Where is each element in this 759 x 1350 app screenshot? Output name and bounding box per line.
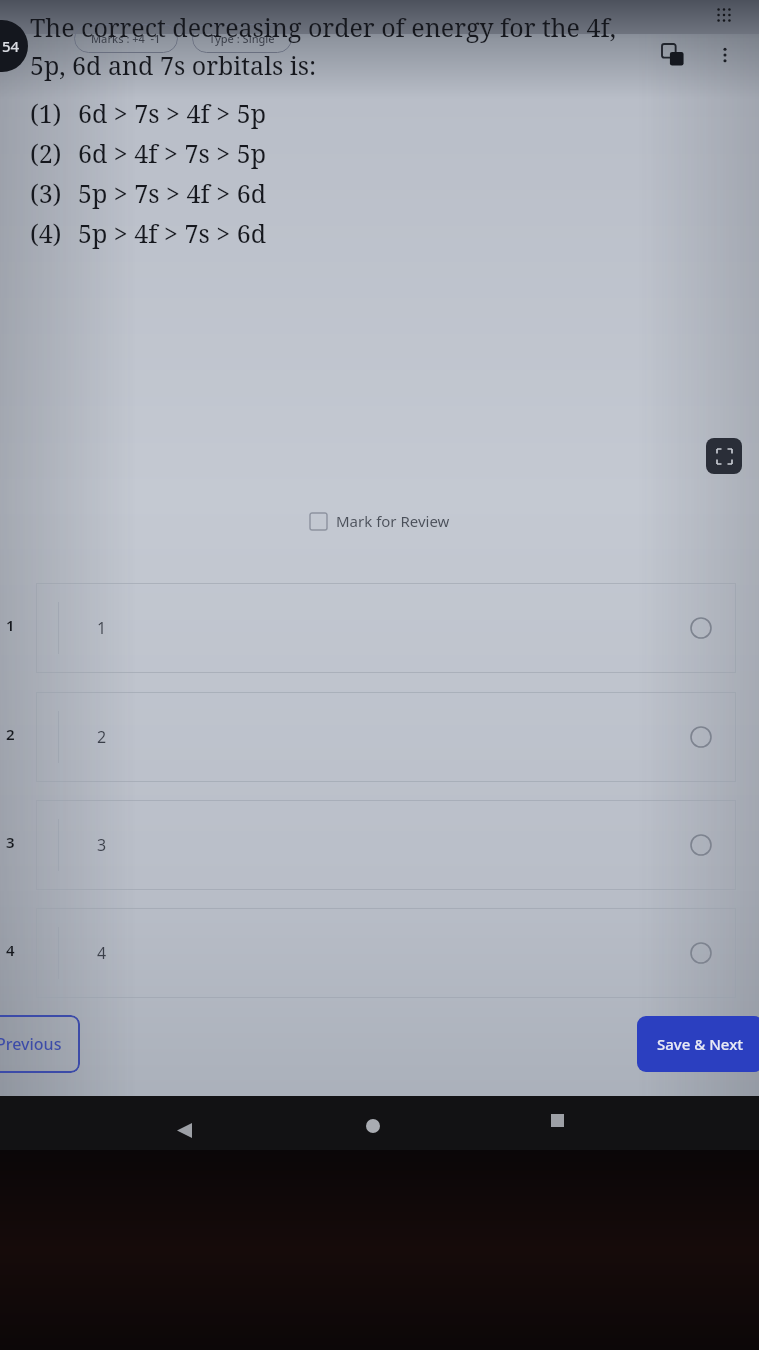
staticText: Type : Single — [209, 31, 275, 46]
staticText: Save & Next — [657, 1034, 744, 1054]
button[interactable]: Marks : +4 -1 — [74, 24, 178, 53]
staticText: 3 — [6, 832, 15, 852]
button[interactable]: More options — [705, 35, 745, 75]
button[interactable]: 1 — [36, 583, 736, 673]
staticText: Marks : +4 -1 — [91, 31, 161, 46]
staticText: (1) — [30, 96, 62, 130]
button[interactable]: Home — [351, 1104, 395, 1148]
button[interactable]: 54 — [0, 20, 28, 72]
staticText: 1 — [6, 615, 15, 635]
staticText: 3 — [97, 834, 107, 856]
button[interactable]: Recent apps — [535, 1098, 579, 1142]
staticText: 5p, 6d and 7s orbitals is: — [30, 48, 317, 82]
staticText: (3) — [30, 176, 62, 210]
staticText: 2 — [97, 726, 107, 748]
button[interactable]: 3 — [36, 800, 736, 890]
staticText: 6d > 4f > 7s > 5p — [78, 136, 267, 170]
staticText: 2 — [6, 724, 15, 744]
staticText: 5p > 4f > 7s > 6d — [78, 216, 267, 250]
button[interactable]: Apps — [711, 2, 737, 28]
button[interactable]: Save & Next — [637, 1016, 759, 1072]
staticText: (4) — [30, 216, 62, 250]
staticText: Mark for Review — [336, 511, 450, 531]
staticText: Previous — [0, 1033, 62, 1055]
button[interactable]: Translate — [653, 35, 693, 75]
button[interactable]: Previous — [0, 1015, 80, 1073]
button[interactable]: 2 — [36, 692, 736, 782]
staticText: 1 — [97, 617, 107, 639]
button[interactable]: Type : Single — [192, 24, 292, 53]
staticText: 5p > 7s > 4f > 6d — [78, 176, 267, 210]
staticText: 4 — [97, 942, 107, 964]
staticText: The correct decreasing order of energy f… — [30, 10, 616, 44]
staticText: (2) — [30, 136, 62, 170]
staticText: 6d > 7s > 4f > 5p — [78, 96, 267, 130]
staticText: 4 — [6, 940, 15, 960]
button[interactable]: Back — [162, 1108, 206, 1152]
button[interactable]: Mark for Review — [310, 511, 450, 531]
button[interactable]: Fullscreen — [706, 438, 742, 474]
button[interactable]: 4 — [36, 908, 736, 998]
staticText: 54 — [2, 36, 20, 56]
